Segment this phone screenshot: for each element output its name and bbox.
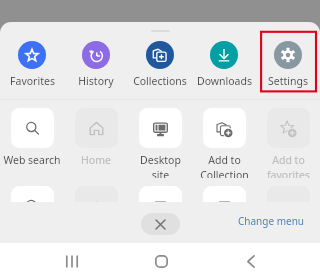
staticText: Settings [268,74,308,88]
button[interactable]: Home [64,108,128,178]
button[interactable] [128,186,192,202]
button[interactable]: Add to favorites [256,108,320,178]
staticText: Change menu [238,214,305,228]
staticText: Web search [3,153,61,167]
button[interactable]: Close [141,213,180,235]
button[interactable]: Recent apps [50,243,94,280]
button[interactable]: Settings [256,41,320,88]
button[interactable]: Collections [128,41,192,88]
button[interactable]: Web search [0,108,64,178]
staticText: Collections [133,74,187,88]
button[interactable]: History [64,41,128,88]
staticText: Add to Collection [200,153,249,178]
staticText: Desktop site [140,153,181,178]
button[interactable]: Desktop site [128,108,192,178]
button[interactable] [192,186,256,202]
staticText: Favorites [10,74,55,88]
button[interactable]: Home [139,243,184,280]
button[interactable] [0,186,64,202]
button[interactable]: Favorites [0,41,64,88]
staticText: Home [81,153,111,167]
button[interactable]: Downloads [192,41,256,88]
staticText: Add to favorites [267,153,310,178]
button[interactable]: Change menu [238,214,320,228]
button[interactable]: Back [229,243,273,280]
staticText: History [78,74,114,88]
staticText: Downloads [197,74,252,88]
button[interactable]: Add to Collection [192,108,256,178]
